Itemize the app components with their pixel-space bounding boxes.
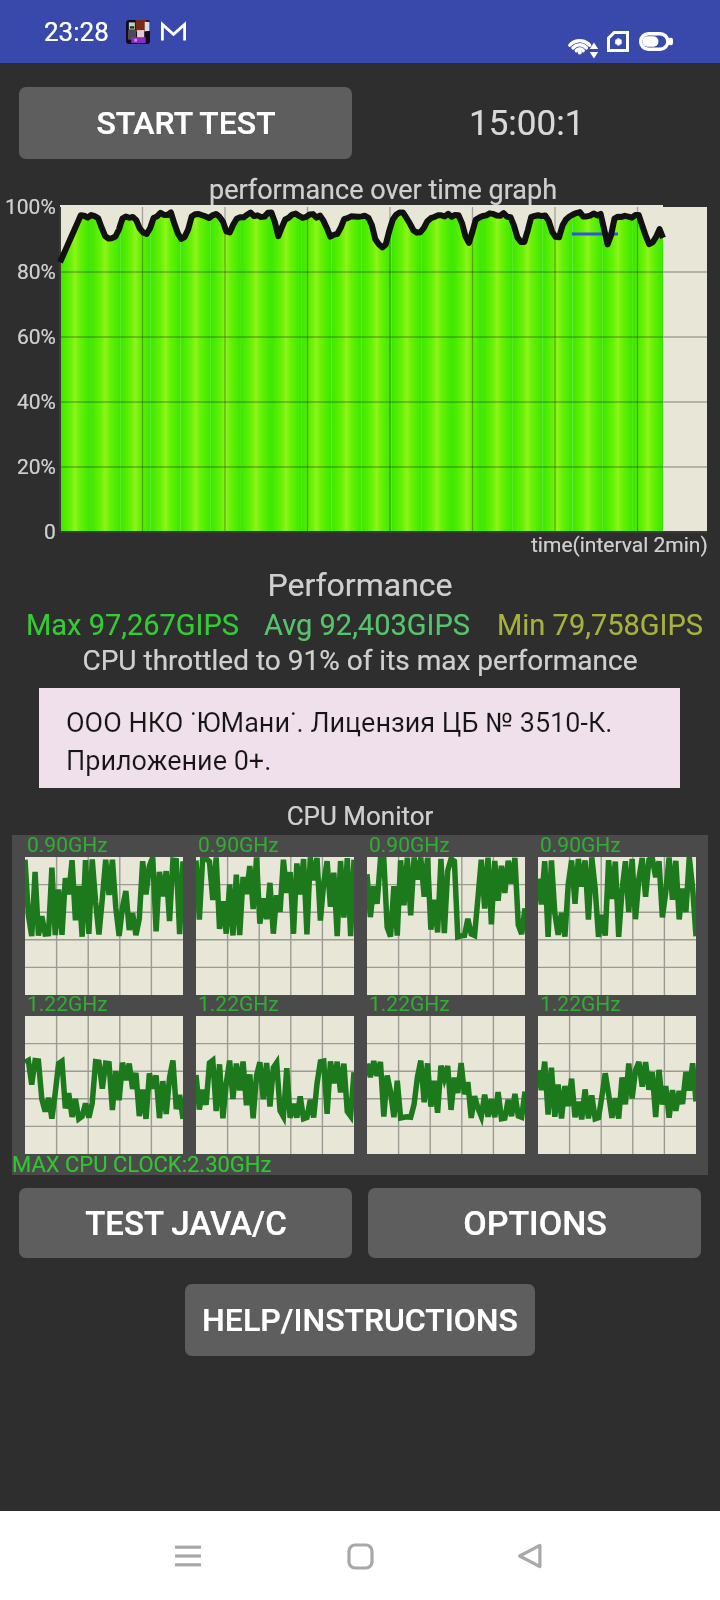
staticText: 20%: [17, 455, 56, 480]
staticText: HELP/INSTRUCTIONS: [202, 1301, 518, 1339]
staticText: Приложение 0+.: [66, 745, 272, 777]
staticText: 15:00:1: [469, 103, 585, 144]
button[interactable]: Back: [500, 1526, 560, 1586]
staticText: 23:28: [44, 17, 109, 47]
staticText: 0.90GHz: [540, 833, 621, 858]
staticText: 40%: [17, 390, 56, 415]
staticText: MAX CPU CLOCK:2.30GHz: [12, 1152, 272, 1178]
button[interactable]: START TEST: [19, 87, 352, 159]
staticText: CPU Monitor: [0, 801, 720, 831]
button[interactable]: HELP/INSTRUCTIONS: [185, 1284, 535, 1356]
button[interactable]: ООО НКО ˙ЮМани˙. Лицензия ЦБ № 3510-К.: [39, 688, 680, 788]
staticText: time(interval 2min): [531, 533, 708, 558]
staticText: 0: [44, 520, 56, 545]
staticText: 0.90GHz: [27, 833, 108, 858]
staticText: 0.90GHz: [198, 833, 279, 858]
staticText: 60%: [17, 325, 56, 350]
staticText: Max 97,267GIPS: [26, 608, 240, 642]
staticText: TEST JAVA/C: [85, 1204, 287, 1243]
staticText: 1.22GHz: [198, 992, 279, 1017]
button[interactable]: TEST JAVA/C: [19, 1188, 352, 1258]
staticText: Performance: [0, 566, 720, 604]
staticText: 1.22GHz: [540, 992, 621, 1017]
staticText: performance over time graph: [209, 174, 558, 206]
staticText: OPTIONS: [463, 1203, 607, 1243]
staticText: START TEST: [96, 104, 276, 142]
staticText: 1.22GHz: [27, 992, 108, 1017]
button[interactable]: Home: [330, 1526, 390, 1586]
staticText: 80%: [17, 260, 56, 285]
staticText: 100%: [5, 195, 56, 220]
staticText: 1.22GHz: [369, 992, 450, 1017]
button[interactable]: Recent apps: [158, 1526, 218, 1586]
staticText: 0.90GHz: [369, 833, 450, 858]
staticText: CPU throttled to 91% of its max performa…: [0, 644, 720, 677]
button[interactable]: OPTIONS: [368, 1188, 701, 1258]
staticText: Avg 92,403GIPS: [264, 608, 470, 642]
staticText: Min 79,758GIPS: [497, 608, 703, 642]
staticText: ООО НКО ˙ЮМани˙. Лицензия ЦБ № 3510-К.: [66, 707, 613, 739]
